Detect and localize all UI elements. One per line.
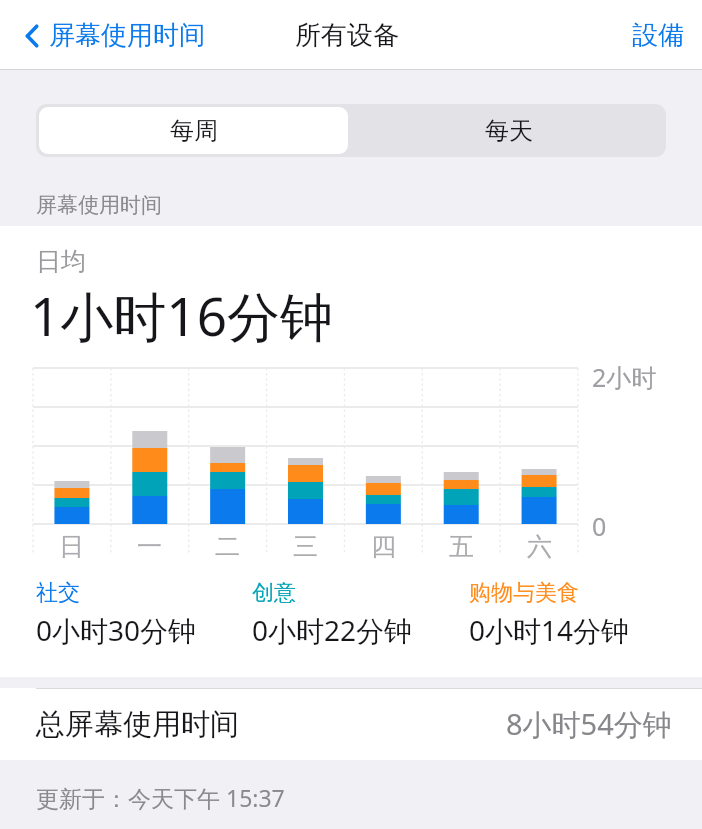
staticText: 每天 (485, 116, 533, 146)
staticText: 每周 (170, 116, 218, 146)
staticText: 五 (449, 531, 474, 562)
staticText: 所有设备 (295, 19, 399, 52)
staticText: 0 (592, 509, 607, 543)
staticText: 0小时30分钟 (36, 611, 197, 649)
staticText: 二 (215, 531, 240, 562)
button[interactable]: 购物与美食 (469, 579, 686, 649)
button[interactable]: 每周 (39, 107, 348, 154)
staticText: 一 (137, 531, 162, 562)
button[interactable]: 社交 (36, 579, 252, 649)
staticText: 8小时54分钟 (506, 704, 672, 744)
staticText: 0小时22分钟 (252, 611, 413, 649)
button[interactable]: 创意 (252, 579, 469, 649)
staticText: 設備 (632, 19, 684, 52)
staticText: 日均 (36, 246, 86, 277)
staticText: 屏幕使用时间 (36, 192, 162, 218)
button[interactable]: 总屏幕使用时间 (0, 688, 702, 760)
button[interactable]: 返回屏幕使用时间 (0, 11, 215, 60)
staticText: 社交 (36, 579, 80, 607)
button[interactable]: 設備 (614, 9, 702, 62)
button[interactable]: 每天 (351, 104, 666, 157)
staticText: 更新于：今天下午 15:37 (36, 782, 285, 813)
staticText: 日 (59, 531, 84, 562)
staticText: 0小时14分钟 (469, 611, 630, 649)
staticText: 1小时16分钟 (30, 279, 333, 351)
staticText: 三 (293, 531, 318, 562)
staticText: 2小时 (592, 360, 657, 394)
staticText: 四 (371, 531, 396, 562)
staticText: 总屏幕使用时间 (36, 706, 239, 743)
staticText: 创意 (252, 579, 296, 607)
staticText: 购物与美食 (469, 579, 579, 607)
staticText: 六 (527, 531, 552, 562)
staticText: 屏幕使用时间 (49, 19, 205, 52)
